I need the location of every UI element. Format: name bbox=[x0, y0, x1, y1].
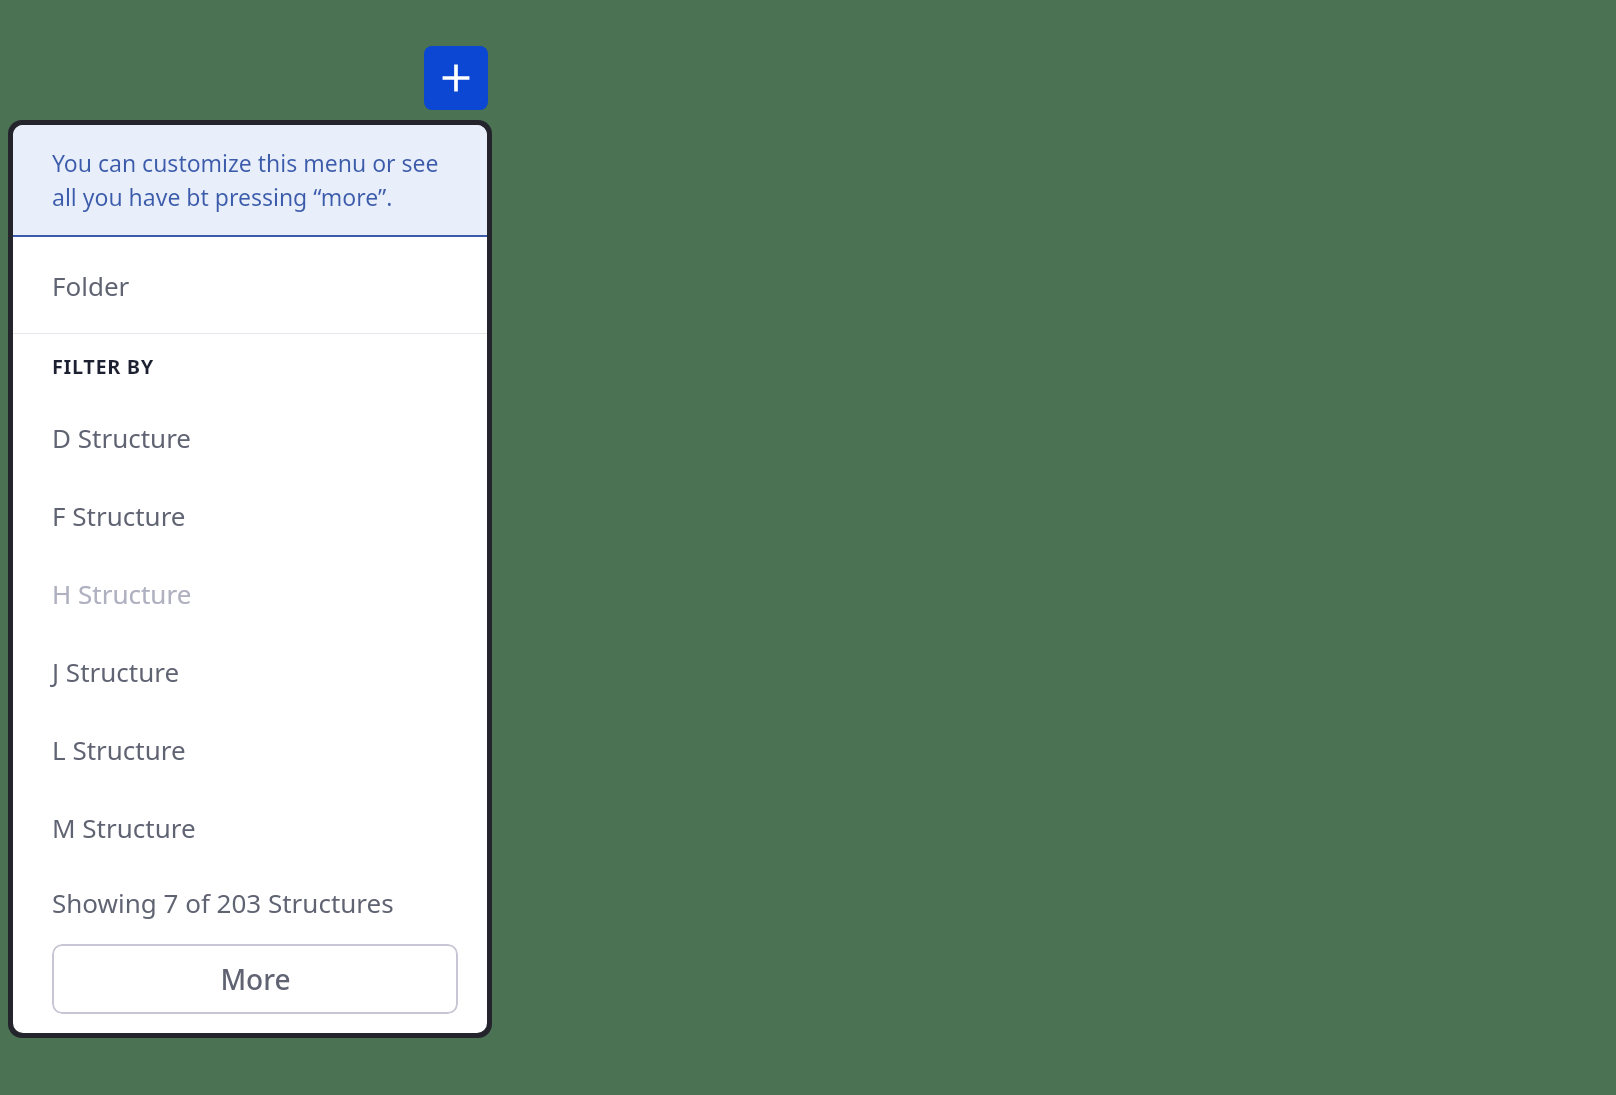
staticText: F Structure bbox=[52, 498, 186, 533]
button[interactable]: J Structure bbox=[13, 632, 487, 710]
button[interactable]: Folder bbox=[13, 237, 487, 333]
button[interactable]: Add bbox=[424, 46, 488, 110]
button[interactable]: L Structure bbox=[13, 710, 487, 788]
staticText: You can customize this menu or see all y… bbox=[52, 147, 461, 213]
button[interactable]: D Structure bbox=[13, 398, 487, 476]
staticText: H Structure bbox=[52, 576, 192, 611]
button[interactable]: H Structure bbox=[13, 554, 487, 632]
button[interactable]: You can customize this menu or see all y… bbox=[13, 125, 487, 235]
staticText: M Structure bbox=[52, 810, 196, 845]
button[interactable]: More bbox=[52, 944, 458, 1014]
staticText: More bbox=[220, 960, 291, 998]
staticText: Folder bbox=[52, 268, 130, 303]
button[interactable]: F Structure bbox=[13, 476, 487, 554]
staticText: Showing 7 of 203 Structures bbox=[52, 885, 394, 920]
staticText: L Structure bbox=[52, 732, 186, 767]
staticText: D Structure bbox=[52, 420, 192, 455]
button[interactable]: M Structure bbox=[13, 788, 487, 866]
staticText: FILTER BY bbox=[52, 353, 154, 380]
staticText: J Structure bbox=[52, 654, 180, 689]
